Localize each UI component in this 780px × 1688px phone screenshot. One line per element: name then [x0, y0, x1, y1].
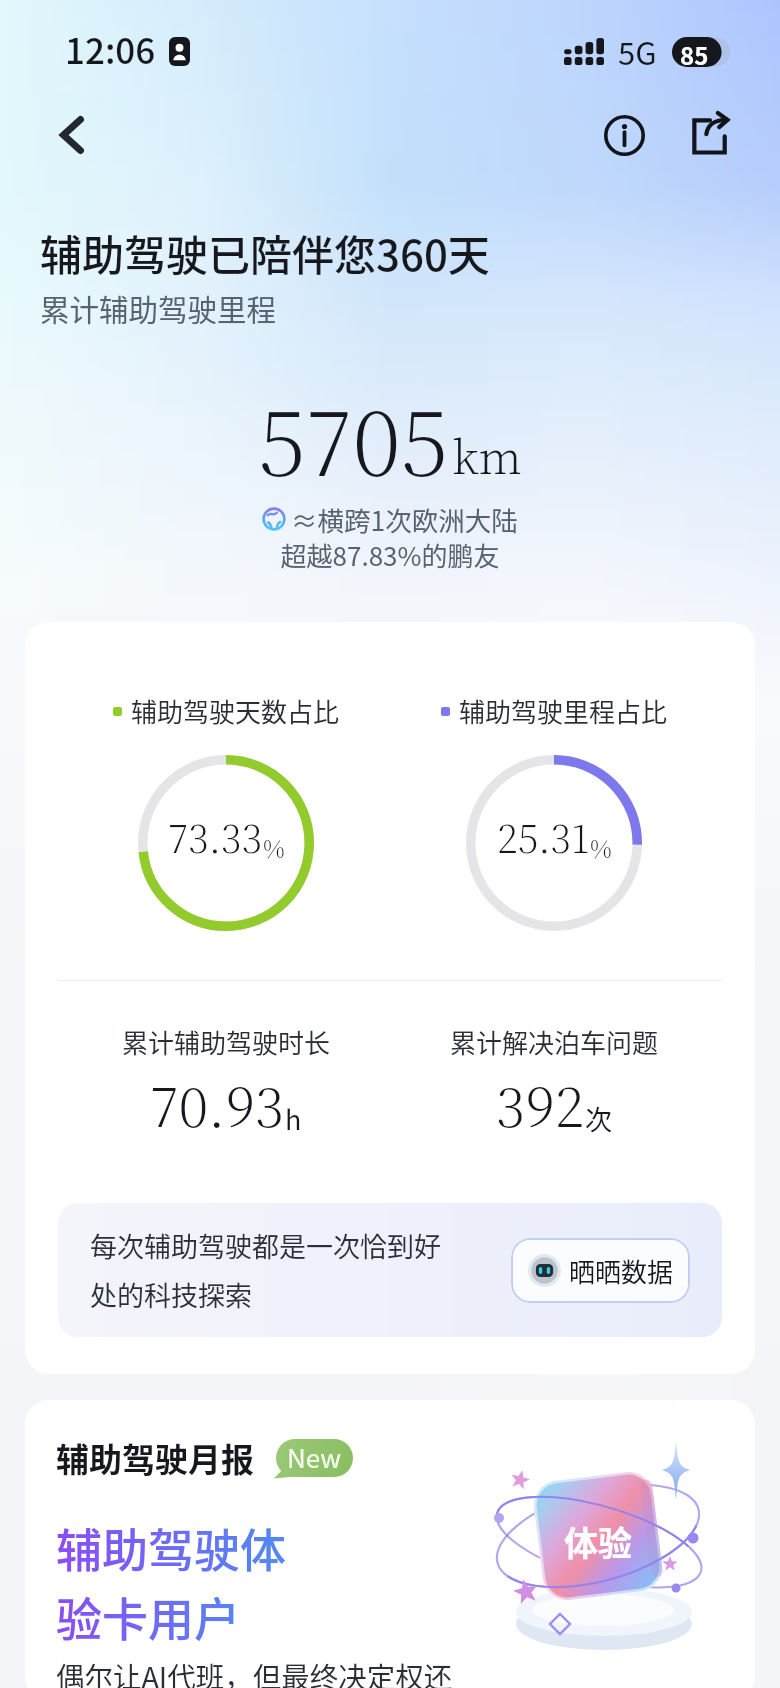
- staticText: %: [590, 830, 612, 864]
- button[interactable]: 体验: [25, 1400, 755, 1688]
- staticText: 25.31: [497, 809, 590, 864]
- staticText: h: [285, 1099, 302, 1138]
- staticText: 累计解决泊车问题: [450, 1023, 659, 1061]
- staticText: 辅助驾驶体: [56, 1514, 286, 1581]
- staticText: 73.33: [168, 809, 263, 864]
- button[interactable]: Info: [592, 103, 656, 167]
- staticText: 偶尔让AI代班，但最终决定权还: [56, 1655, 453, 1688]
- staticText: 次: [585, 1099, 612, 1138]
- staticText: 辅助驾驶天数占比: [131, 692, 340, 730]
- staticText: 累计辅助驾驶时长: [122, 1023, 331, 1061]
- staticText: 体验: [564, 1517, 632, 1566]
- staticText: 验卡用户: [56, 1583, 240, 1650]
- staticText: 处的科技探索: [90, 1275, 252, 1314]
- staticText: 392: [496, 1065, 585, 1143]
- staticText: 5705: [258, 375, 449, 501]
- staticText: 每次辅助驾驶都是一次恰到好: [90, 1226, 441, 1265]
- staticText: %: [263, 830, 285, 864]
- button[interactable]: Back: [37, 100, 107, 170]
- button[interactable]: 晒晒数据: [511, 1238, 690, 1303]
- staticText: 85: [680, 37, 709, 67]
- staticText: 辅助驾驶已陪伴您360天: [40, 222, 490, 283]
- button[interactable]: Share: [678, 103, 742, 167]
- staticText: 超越87.83%的鹏友: [0, 536, 780, 574]
- staticText: km: [452, 422, 522, 487]
- staticText: 辅助驾驶里程占比: [459, 692, 668, 730]
- staticText: New: [287, 1438, 342, 1476]
- staticText: 5G: [618, 29, 657, 74]
- staticText: ≈横跨1次欧洲大陆: [291, 500, 518, 538]
- staticText: 晒晒数据: [569, 1252, 674, 1290]
- staticText: 12:06: [65, 23, 156, 74]
- staticText: 辅助驾驶月报: [56, 1434, 254, 1482]
- staticText: 累计辅助驾驶里程: [40, 287, 277, 330]
- staticText: 70.93: [150, 1065, 285, 1143]
